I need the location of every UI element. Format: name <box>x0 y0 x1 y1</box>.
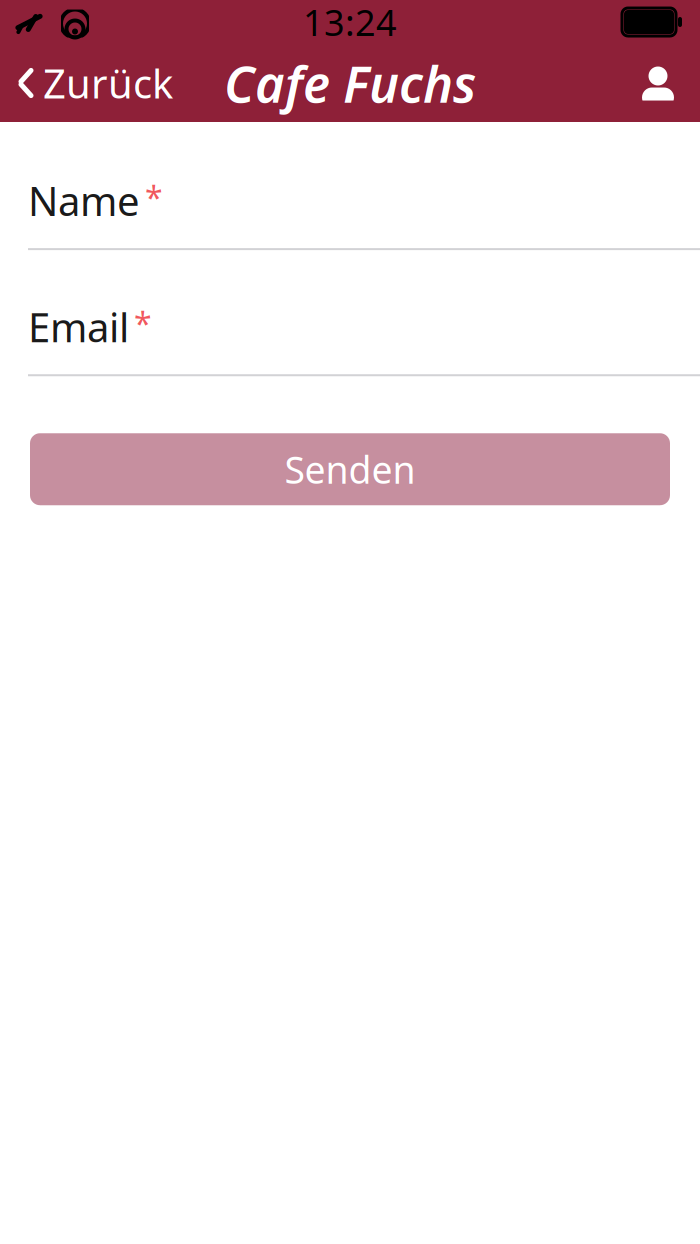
staticText: Cafe Fuchs <box>224 49 476 117</box>
staticText: 13:24 <box>303 0 397 46</box>
staticText: Senden <box>284 444 415 494</box>
button[interactable]: Account <box>638 54 700 112</box>
staticText: Name <box>28 174 140 227</box>
button[interactable]: Zurück <box>0 46 173 119</box>
staticText: Email <box>28 300 129 353</box>
staticText: * <box>134 302 152 345</box>
staticText: Zurück <box>43 56 173 109</box>
staticText: * <box>145 176 163 218</box>
button[interactable]: Senden <box>30 433 670 505</box>
